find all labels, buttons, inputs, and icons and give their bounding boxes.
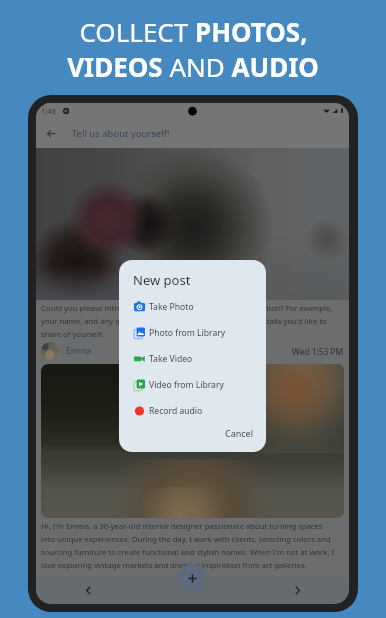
staticText: COLLECT PHOTOS,: [79, 14, 308, 49]
staticText: Wed 1:53 PM: [292, 346, 344, 357]
button[interactable]: Cancel: [209, 424, 266, 452]
button[interactable]: Back: [36, 118, 66, 148]
staticText: Emma: [66, 345, 92, 357]
button[interactable]: Add: [178, 564, 207, 592]
button[interactable]: Photo from Library: [119, 320, 266, 346]
button[interactable]: Next: [286, 579, 308, 601]
staticText: New post: [133, 271, 191, 289]
button[interactable]: Take Video: [119, 346, 266, 372]
button[interactable]: Take Photo: [119, 294, 266, 320]
staticText: Take Video: [149, 353, 193, 365]
staticText: Photo from Library: [149, 327, 226, 339]
staticText: Hi, I'm Emma, a 30-year-old interior des…: [41, 521, 335, 570]
button[interactable]: Record audio: [119, 398, 266, 424]
staticText: Video from Library: [149, 379, 224, 391]
staticText: Cancel: [225, 427, 254, 439]
staticText: 1:43: [41, 106, 56, 116]
staticText: Take Photo: [149, 301, 194, 313]
staticText: Record audio: [149, 405, 203, 417]
button[interactable]: Previous: [77, 579, 99, 601]
button[interactable]: Video from Library: [119, 372, 266, 398]
staticText: VIDEOS AND AUDIO: [67, 49, 319, 84]
staticText: Tell us about yourself!: [72, 127, 170, 140]
staticText: Could you please introduce yourself and …: [41, 303, 335, 339]
